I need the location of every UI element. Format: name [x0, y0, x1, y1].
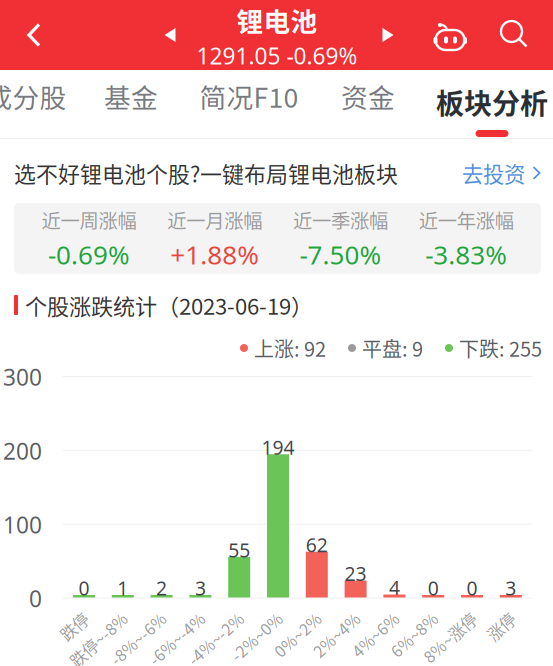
- staticText: 上涨: 92: [254, 333, 326, 362]
- staticText: 简况F10: [199, 77, 298, 115]
- button[interactable]: Search: [489, 0, 541, 70]
- staticText: -0.69%: [48, 237, 130, 272]
- staticText: -7.50%: [299, 237, 381, 272]
- button[interactable]: Previous sector: [150, 0, 190, 70]
- button[interactable]: 资金: [326, 70, 410, 122]
- staticText: 下跌: 255: [459, 333, 542, 362]
- staticText: 个股涨跌统计（2023-06-19）: [25, 289, 313, 321]
- staticText: 23: [345, 560, 367, 587]
- staticText: 去投资: [462, 158, 525, 188]
- staticText: +1.88%: [170, 237, 259, 272]
- staticText: 6%~8%: [378, 604, 435, 627]
- staticText: 1: [117, 575, 128, 601]
- staticText: 近一月涨幅: [167, 206, 262, 234]
- staticText: -3.83%: [425, 237, 507, 272]
- staticText: -4%~-2%: [172, 604, 241, 627]
- staticText: 平盘: 9: [362, 333, 423, 362]
- button[interactable]: Back: [8, 0, 60, 70]
- staticText: -6%~-4%: [133, 604, 202, 627]
- staticText: 2: [156, 575, 167, 601]
- staticText: 62: [306, 532, 328, 558]
- staticText: 0: [78, 575, 89, 601]
- button[interactable]: 选不好锂电池个股?一键布局锂电池板块: [0, 145, 553, 201]
- button[interactable]: AI assistant: [424, 2, 476, 72]
- staticText: 0: [428, 575, 439, 601]
- staticText: 近一季涨幅: [293, 206, 388, 234]
- staticText: -8%~-6%: [95, 604, 164, 627]
- staticText: 资金: [341, 77, 395, 115]
- button[interactable]: Next sector: [368, 0, 408, 70]
- staticText: -2%~0%: [217, 604, 280, 627]
- staticText: 8%~涨停: [409, 604, 474, 627]
- staticText: 近一周涨幅: [41, 206, 136, 234]
- staticText: 板块分析: [436, 82, 548, 122]
- staticText: 成分股: [0, 77, 66, 115]
- staticText: 2%~4%: [301, 604, 358, 627]
- staticText: 基金: [104, 77, 158, 115]
- staticText: 300: [3, 362, 42, 392]
- staticText: 3: [505, 575, 516, 601]
- staticText: 锂电池: [236, 1, 317, 39]
- button[interactable]: 板块分析: [432, 70, 552, 134]
- staticText: 4: [389, 574, 400, 601]
- staticText: 194: [261, 434, 294, 460]
- staticText: 3: [195, 575, 206, 601]
- button[interactable]: 成分股: [0, 70, 68, 122]
- staticText: 选不好锂电池个股?一键布局锂电池板块: [14, 157, 398, 189]
- staticText: 55: [228, 537, 250, 563]
- staticText: 近一年涨幅: [419, 206, 514, 234]
- staticText: 涨停: [481, 604, 513, 627]
- staticText: 0%~2%: [262, 604, 319, 627]
- button[interactable]: 基金: [89, 70, 173, 122]
- staticText: 4%~6%: [339, 604, 396, 627]
- button[interactable]: 简况F10: [194, 70, 304, 122]
- staticText: 200: [3, 435, 42, 466]
- staticText: 跌停~-8%: [54, 604, 125, 627]
- staticText: 1291.05 -0.69%: [196, 40, 357, 71]
- staticText: 0: [29, 583, 42, 614]
- staticText: 跌停: [54, 604, 86, 627]
- staticText: 100: [3, 509, 42, 540]
- staticText: 0: [466, 575, 477, 601]
